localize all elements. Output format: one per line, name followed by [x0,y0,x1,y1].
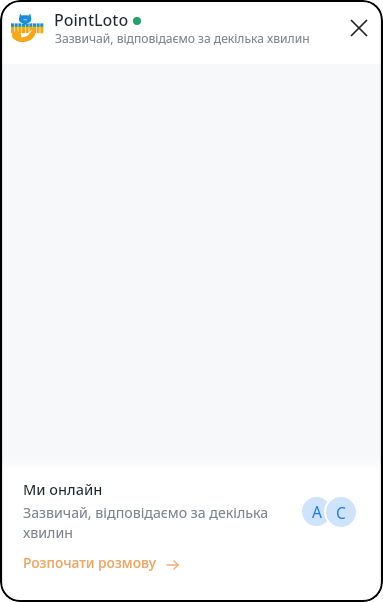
staticText: C [336,502,346,523]
staticText: Розпочати розмову [23,553,156,572]
staticText: Зазвичай, відповідаємо за декілька хвили… [23,503,269,542]
staticText: PointLoto [54,9,129,31]
staticText: A [312,501,322,522]
button[interactable]: Розпочати розмову [23,553,178,572]
staticText: Зазвичай, відповідаємо за декілька хвили… [55,30,310,46]
button[interactable]: Close [337,6,381,50]
staticText: Ми онлайн [23,479,103,499]
